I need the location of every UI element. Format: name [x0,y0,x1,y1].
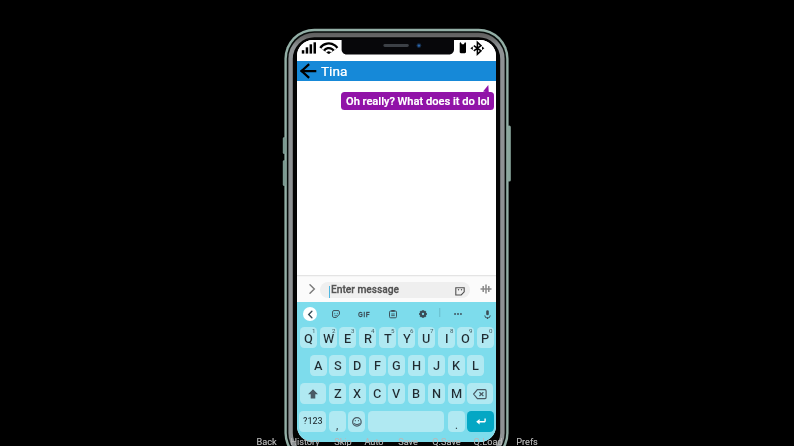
staticText: Z [334,386,342,401]
button[interactable]: , [329,411,346,432]
button[interactable]: Space [368,411,444,432]
staticText: E [344,331,352,346]
button[interactable]: K [448,355,465,376]
button[interactable]: Q.Save [422,435,470,446]
button[interactable]: X [349,383,366,404]
staticText: Q [304,331,313,346]
staticText: C [373,386,382,401]
button[interactable]: Enter message [320,282,470,298]
staticText: History [290,436,320,446]
staticText: M [451,386,463,401]
button[interactable]: E [339,327,356,348]
button[interactable]: D [349,355,366,376]
button[interactable]: J [428,355,445,376]
button[interactable]: Backspace [467,383,493,404]
staticText: Q.Load [473,436,503,446]
staticText: 2 [332,327,336,334]
button[interactable]: H [408,355,425,376]
staticText: H [412,358,422,373]
staticText: G [392,358,401,373]
staticText: X [353,386,362,401]
button[interactable]: T [379,327,396,348]
button[interactable]: More options [451,307,465,321]
button[interactable]: Voice input [479,282,493,296]
button[interactable]: B [408,383,425,404]
staticText: 0 [489,327,493,334]
staticText: Prefs [516,436,538,446]
button[interactable]: Save [384,435,432,446]
button[interactable]: G [388,355,405,376]
button[interactable]: Enter [467,411,494,432]
button[interactable]: Z [329,383,346,404]
button[interactable]: Shift [300,383,326,404]
button[interactable]: O [457,327,474,348]
staticText: V [392,386,401,401]
button[interactable]: Expand toolbar [305,282,319,296]
staticText: N [432,386,442,401]
staticText: , [336,419,339,431]
button[interactable]: GIF [354,308,374,319]
button[interactable]: R [359,327,376,348]
staticText: W [323,331,335,346]
button[interactable]: C [369,383,386,404]
button[interactable]: M [448,383,465,404]
staticText: Y [403,331,411,346]
staticText: F [374,358,382,373]
staticText: 5 [391,327,395,334]
button[interactable]: Emoji [348,411,365,432]
staticText: R [364,331,372,346]
staticText: K [452,358,461,373]
staticText: 4 [371,327,375,334]
staticText: O [461,331,470,346]
staticText: B [412,386,421,401]
button[interactable]: History [281,435,329,446]
staticText: U [422,331,431,346]
button[interactable]: Stickers [454,285,465,296]
staticText: D [353,358,362,373]
button[interactable]: Voice typing [480,307,494,321]
button[interactable]: Skip [319,435,367,446]
staticText: Q.Save [432,436,461,446]
button[interactable]: Y [398,327,415,348]
button[interactable]: Back [242,435,290,446]
button[interactable]: N [428,383,445,404]
button[interactable]: A [310,355,327,376]
button[interactable]: W [320,327,337,348]
button[interactable]: Auto [350,435,398,446]
staticText: P [481,331,490,346]
button[interactable]: F [369,355,386,376]
staticText: 6 [410,327,414,334]
staticText: A [314,358,323,373]
staticText: I [445,331,449,346]
staticText: ?123 [303,416,323,427]
button[interactable]: Prefs [503,435,551,446]
button[interactable]: Q.Load [464,435,512,446]
staticText: 7 [430,327,434,334]
button[interactable]: Hide toolbar [303,307,317,321]
button[interactable]: Oh really? What does it do lol [341,92,494,110]
button[interactable]: . [448,411,465,432]
staticText: . [455,419,458,431]
staticText: 3 [351,327,355,334]
button[interactable]: Keyboard settings [416,307,430,321]
button[interactable]: Clipboard [386,307,400,321]
staticText: S [334,358,342,373]
button[interactable]: ?123 [299,411,326,432]
button[interactable]: S [329,355,346,376]
button[interactable]: P [477,327,494,348]
button[interactable]: Back [297,61,321,81]
button[interactable]: I [438,327,455,348]
button[interactable]: Stickers [329,307,343,321]
staticText: 1 [312,327,316,334]
staticText: J [433,358,441,373]
staticText: Back [256,436,277,446]
button[interactable]: L [467,355,484,376]
button[interactable]: Q [300,327,317,348]
staticText: Save [398,436,418,446]
staticText: Enter message [331,284,400,296]
staticText: 9 [469,327,473,334]
staticText: 8 [450,327,454,334]
button[interactable]: Back [297,61,496,81]
button[interactable]: U [418,327,435,348]
button[interactable]: V [388,383,405,404]
